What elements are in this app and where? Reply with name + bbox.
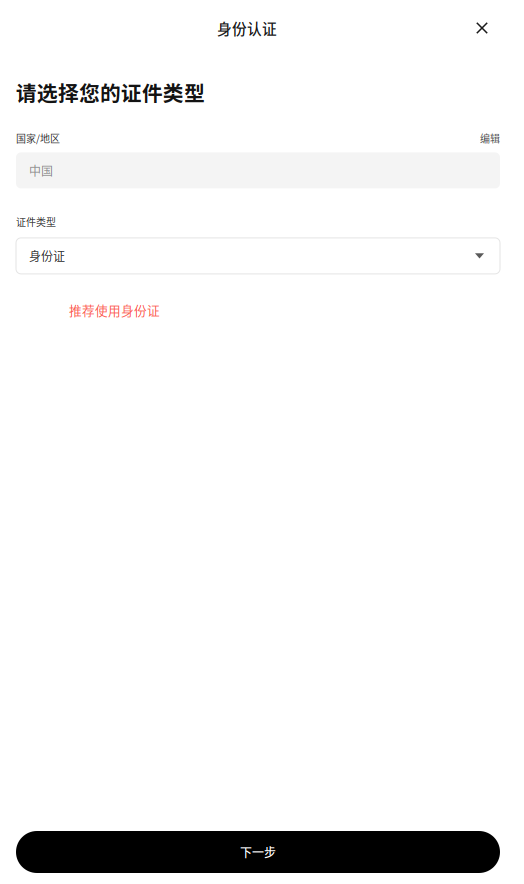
staticText: 中国	[29, 162, 53, 179]
staticText: 身份证	[29, 247, 65, 265]
button[interactable]: 关闭	[464, 10, 500, 46]
staticText: 编辑	[480, 131, 500, 145]
staticText: 证件类型	[16, 214, 56, 229]
button[interactable]: 编辑	[480, 131, 500, 145]
button[interactable]: 下一步	[16, 831, 500, 873]
staticText: 身份认证	[217, 17, 277, 39]
button[interactable]: 身份证	[16, 238, 500, 274]
staticText: 推荐使用身份证	[69, 301, 160, 319]
staticText: 下一步	[240, 843, 276, 861]
staticText: 请选择您的证件类型	[16, 77, 205, 107]
staticText: 国家/地区	[16, 131, 60, 145]
